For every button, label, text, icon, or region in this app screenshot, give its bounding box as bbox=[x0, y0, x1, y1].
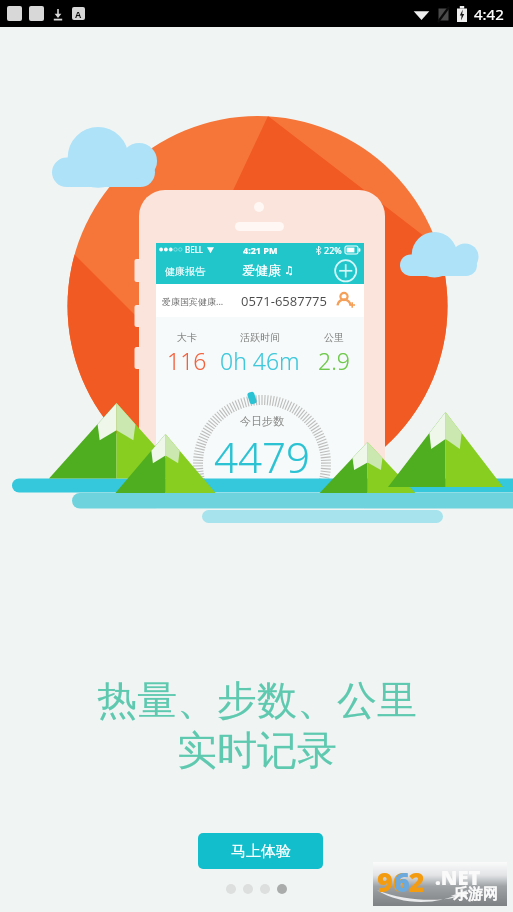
staticText: 6 bbox=[394, 863, 410, 900]
staticText: 马上体验 bbox=[231, 842, 291, 861]
staticText: .NET bbox=[435, 864, 481, 891]
staticText: 962 bbox=[377, 863, 425, 900]
staticText: BELL bbox=[185, 244, 204, 255]
staticText: 0571-6587775 bbox=[241, 292, 327, 310]
staticText: 2.9 bbox=[318, 345, 350, 376]
staticText: A bbox=[75, 8, 82, 20]
button[interactable]: 马上体验 bbox=[198, 833, 323, 869]
staticText: ♫ bbox=[284, 264, 294, 277]
staticText: 活跃时间 bbox=[240, 331, 280, 344]
staticText: 0h 46m bbox=[220, 345, 300, 376]
staticText: 公里 bbox=[324, 331, 344, 344]
staticText: 4479 bbox=[214, 428, 310, 485]
staticText: 乐游网 bbox=[453, 885, 498, 904]
staticText: 热量、步数、公里 bbox=[97, 675, 417, 725]
staticText: 今日步数 bbox=[240, 414, 284, 428]
staticText: 健康报告 bbox=[165, 265, 205, 278]
button[interactable]: Page 2 bbox=[243, 884, 253, 894]
staticText: 116 bbox=[167, 345, 207, 376]
staticText: 4:21 PM bbox=[243, 244, 278, 256]
staticText: 实时记录 bbox=[177, 725, 337, 775]
button[interactable]: Page 4 bbox=[277, 884, 287, 894]
staticText: 22% bbox=[324, 244, 342, 256]
button[interactable]: Page 1 bbox=[226, 884, 236, 894]
staticText: 4:42 bbox=[474, 4, 504, 24]
staticText: 大卡 bbox=[177, 331, 197, 344]
button[interactable]: Page 3 bbox=[260, 884, 270, 894]
staticText: 爱健康 bbox=[242, 262, 281, 278]
staticText: 爱康国宾健康... bbox=[162, 295, 224, 307]
